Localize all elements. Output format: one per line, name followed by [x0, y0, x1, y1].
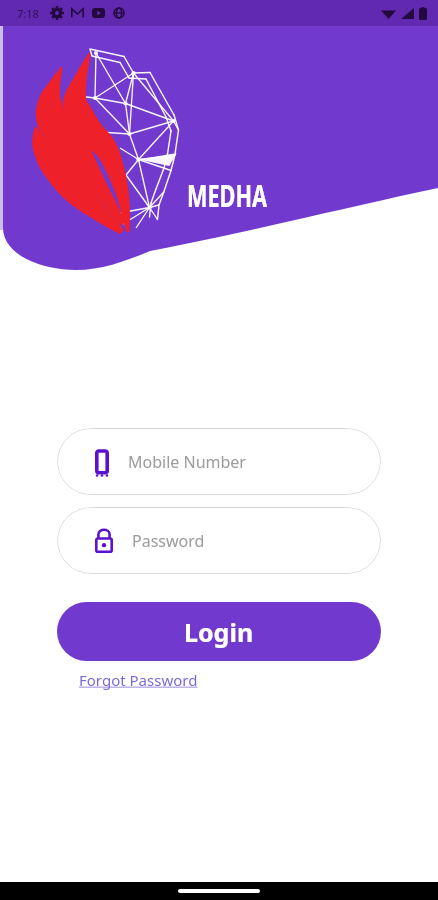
- staticText: Password: [132, 530, 205, 552]
- staticText: Mobile Number: [128, 451, 246, 473]
- staticText: Login: [184, 615, 254, 649]
- button[interactable]: Mobile Number: [57, 428, 381, 495]
- button[interactable]: Login: [57, 602, 381, 661]
- staticText: 7:18: [17, 6, 39, 21]
- button[interactable]: Password: [57, 507, 381, 574]
- staticText: MEDHA: [187, 174, 267, 216]
- button[interactable]: Forgot Password: [79, 670, 198, 690]
